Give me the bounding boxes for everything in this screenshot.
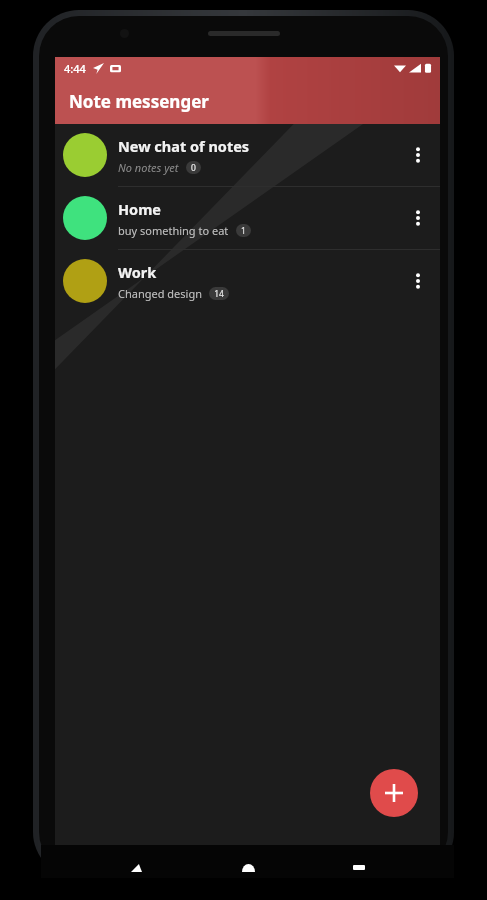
staticText: 14 bbox=[214, 288, 224, 300]
staticText: New chat of notes bbox=[118, 136, 250, 156]
button[interactable]: Recent apps bbox=[342, 857, 376, 878]
staticText: 4:44 bbox=[64, 61, 86, 76]
button[interactable]: More options bbox=[402, 202, 434, 234]
button[interactable]: Work bbox=[55, 250, 440, 312]
staticText: No notes yet bbox=[118, 160, 179, 175]
button[interactable]: Home bbox=[231, 857, 265, 878]
staticText: 1 bbox=[241, 225, 246, 237]
button[interactable]: More options bbox=[402, 139, 434, 171]
button[interactable]: New chat of notes bbox=[55, 124, 440, 186]
button[interactable]: Back bbox=[119, 857, 153, 878]
button[interactable]: Home bbox=[55, 187, 440, 249]
staticText: Changed design bbox=[118, 286, 202, 301]
staticText: buy something to eat bbox=[118, 223, 229, 238]
staticText: Note messenger bbox=[69, 90, 209, 113]
button[interactable]: More options bbox=[402, 265, 434, 297]
staticText: 0 bbox=[191, 162, 196, 174]
staticText: Work bbox=[118, 262, 157, 282]
button[interactable]: New chat bbox=[370, 769, 418, 817]
staticText: Home bbox=[118, 199, 161, 219]
